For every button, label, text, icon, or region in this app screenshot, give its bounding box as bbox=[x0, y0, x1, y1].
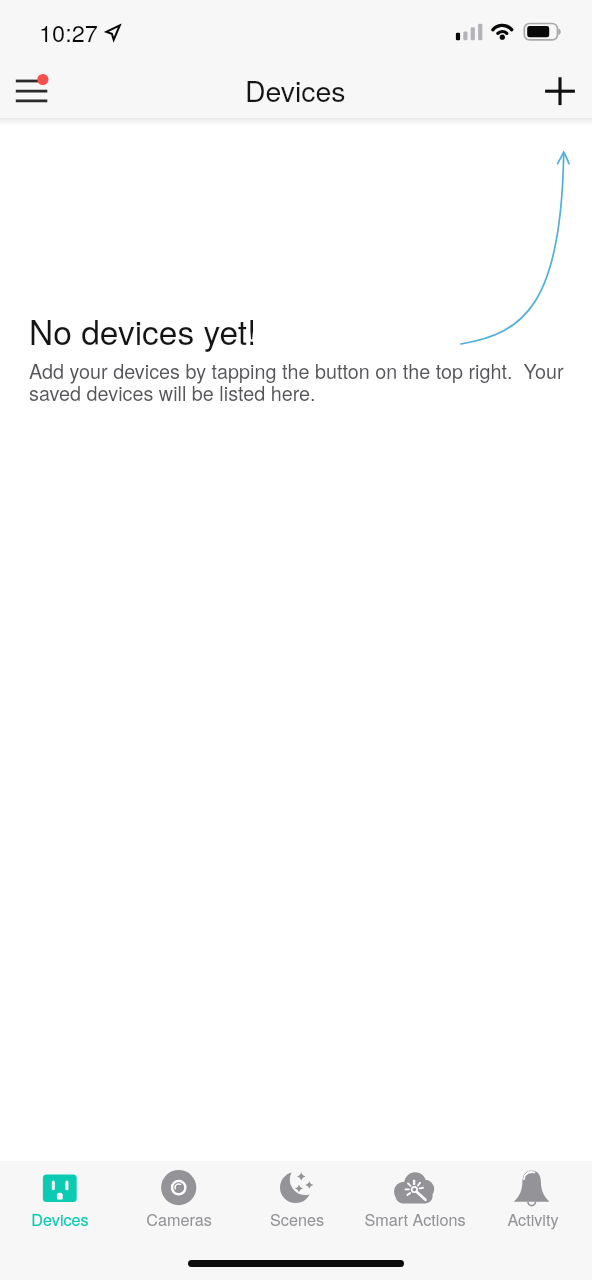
staticText: No devices yet! bbox=[29, 307, 257, 355]
button[interactable]: Smart Actions bbox=[356, 1161, 474, 1230]
staticText: Cameras bbox=[146, 1207, 212, 1230]
staticText: 10:27 bbox=[39, 15, 98, 49]
staticText: Smart Actions bbox=[364, 1207, 466, 1230]
button[interactable]: Scenes bbox=[238, 1161, 356, 1230]
button[interactable]: Cameras bbox=[119, 1161, 238, 1230]
staticText: Add your devices by tapping the button o… bbox=[29, 356, 569, 407]
button[interactable]: Add device bbox=[532, 62, 592, 118]
staticText: Devices bbox=[31, 1207, 89, 1230]
staticText: Activity bbox=[507, 1207, 559, 1230]
staticText: Scenes bbox=[270, 1207, 324, 1230]
button[interactable]: Menu bbox=[6, 62, 62, 118]
button[interactable]: Activity bbox=[474, 1161, 592, 1230]
button[interactable]: Devices bbox=[0, 1161, 119, 1230]
staticText: Devices bbox=[245, 69, 346, 110]
